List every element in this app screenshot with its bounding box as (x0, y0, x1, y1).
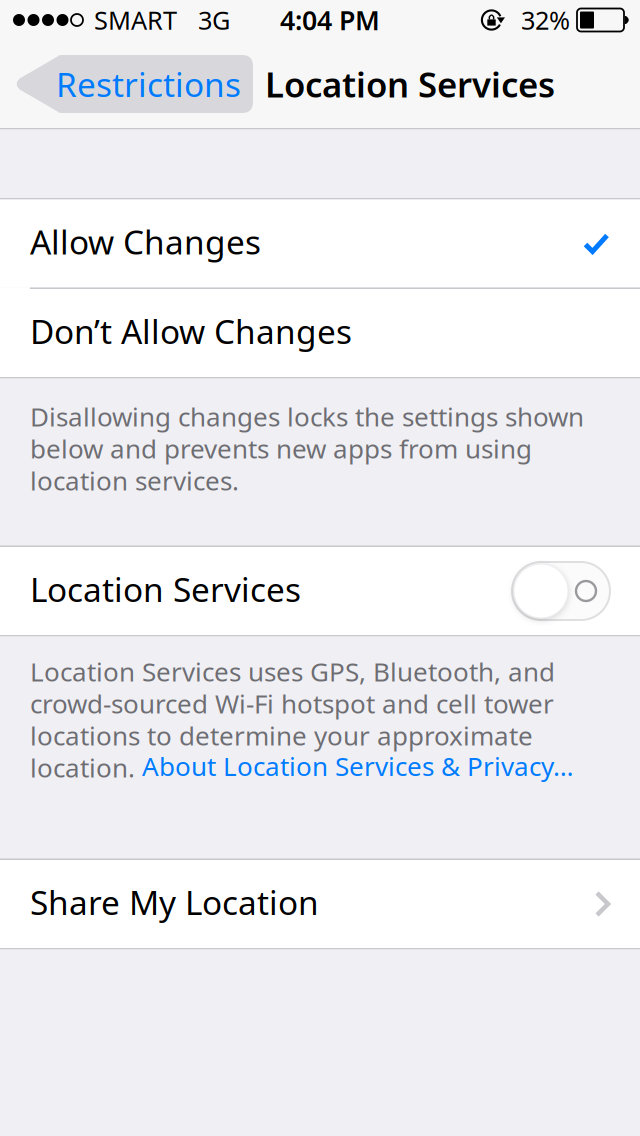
staticText: 32% (521, 3, 570, 37)
staticText: Restrictions (56, 62, 241, 106)
staticText: Location Services uses GPS, Bluetooth, a… (30, 654, 555, 689)
staticText: About Location Services & Privacy… (142, 748, 574, 783)
staticText: Share My Location (30, 879, 319, 925)
button[interactable]: Restrictions (16, 55, 253, 113)
staticText: SMART (94, 3, 177, 37)
button[interactable]: Share My Location (0, 860, 640, 948)
button[interactable]: Don’t Allow Changes (0, 289, 640, 377)
staticText: below and prevents new apps from using (30, 431, 532, 466)
staticText: location services. (30, 463, 239, 498)
staticText: crowd-sourced Wi-Fi hotspot and cell tow… (30, 686, 554, 721)
staticText: Location Services (265, 61, 555, 107)
button[interactable]: Location Services, off (512, 562, 610, 620)
staticText: Allow Changes (30, 219, 261, 264)
staticText: locations to determine your approximate (30, 718, 533, 753)
staticText: Disallowing changes locks the settings s… (30, 399, 584, 434)
staticText: Don’t Allow Changes (30, 308, 352, 354)
staticText: location. (30, 750, 142, 785)
button[interactable]: Allow Changes (0, 199, 640, 287)
staticText: 3G (198, 3, 230, 37)
staticText: 4:04 PM (280, 2, 380, 38)
button[interactable]: About Location Services & Privacy… (142, 750, 574, 782)
staticText: Location Services (30, 566, 301, 612)
